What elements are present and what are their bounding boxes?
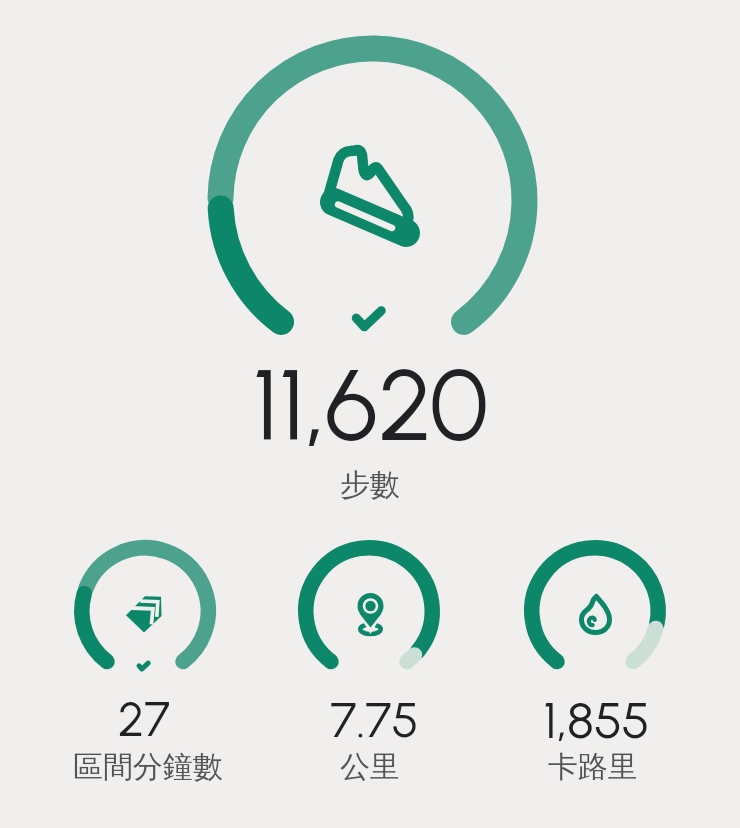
button[interactable]: 11,620	[0, 346, 740, 465]
button[interactable]: 1,855	[486, 690, 706, 751]
staticText: 步數	[340, 466, 400, 504]
button[interactable]: 7.75	[264, 690, 484, 749]
staticText: 27	[118, 690, 170, 748]
staticText: 7.75	[330, 690, 419, 749]
staticText: 1,855	[543, 690, 650, 751]
staticText: 公里	[340, 748, 400, 786]
staticText: 11,620	[252, 346, 489, 465]
staticText: 卡路里	[548, 748, 638, 786]
button[interactable]: 27	[34, 690, 254, 748]
staticText: 區間分鐘數	[73, 748, 223, 786]
